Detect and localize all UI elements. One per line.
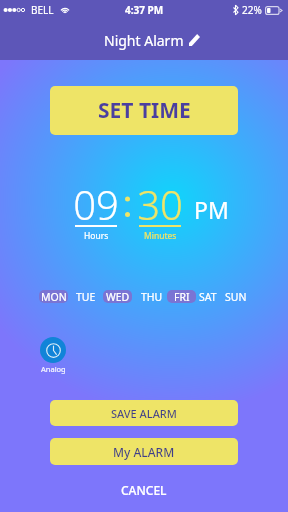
staticText: 30: [137, 177, 183, 225]
button[interactable]: 30: [139, 190, 181, 238]
staticText: 4:37 PM: [125, 3, 164, 17]
staticText: Analog: [41, 364, 66, 374]
button[interactable]: Edit name: [189, 34, 200, 46]
staticText: SAVE ALARM: [111, 406, 177, 421]
staticText: WED: [106, 290, 130, 303]
button[interactable]: Analog clock mode: [40, 337, 66, 374]
button[interactable]: 09: [75, 190, 117, 238]
staticText: Hours: [84, 230, 109, 242]
staticText: 09: [73, 177, 119, 225]
staticText: Night Alarm: [104, 31, 184, 50]
staticText: 22%: [242, 3, 262, 17]
staticText: PM: [194, 194, 229, 225]
button[interactable]: FRI: [167, 290, 196, 303]
button[interactable]: WED: [103, 290, 132, 303]
staticText: THU: [141, 290, 163, 303]
button[interactable]: Night Alarm: [104, 31, 184, 50]
button[interactable]: TUE: [71, 290, 100, 303]
button[interactable]: MON: [39, 290, 68, 303]
button[interactable]: SAT: [193, 290, 222, 303]
button[interactable]: SAVE ALARM: [50, 400, 238, 426]
staticText: BELL: [31, 3, 54, 17]
staticText: SET TIME: [98, 96, 191, 125]
staticText: MON: [41, 290, 67, 303]
button[interactable]: THU: [137, 290, 166, 303]
other: Analog clock mode: [40, 337, 66, 363]
staticText: FRI: [174, 290, 190, 303]
button[interactable]: My ALARM: [50, 438, 238, 465]
button[interactable]: CANCEL: [121, 482, 167, 498]
staticText: My ALARM: [113, 444, 175, 460]
staticText: TUE: [76, 290, 96, 303]
button[interactable]: SUN: [221, 290, 250, 303]
staticText: SUN: [225, 290, 247, 303]
staticText: SAT: [199, 290, 217, 303]
staticText: CANCEL: [121, 482, 167, 498]
button[interactable]: SET TIME: [50, 86, 238, 135]
staticText: Minutes: [144, 230, 177, 242]
